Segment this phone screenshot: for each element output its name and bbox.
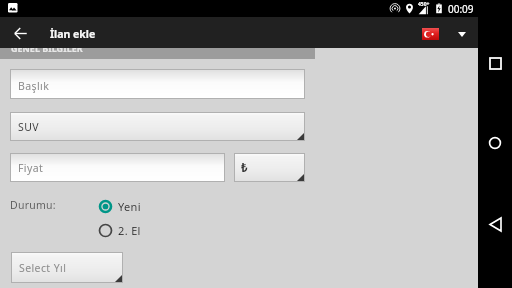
button[interactable]: Back: [482, 211, 508, 237]
staticText: ₺: [241, 160, 248, 176]
staticText: Fiyat: [18, 161, 44, 175]
button[interactable]: Fiyat: [10, 153, 225, 182]
button[interactable]: Language: [414, 17, 446, 48]
button[interactable]: Yeni: [98, 198, 141, 214]
button[interactable]: Recent apps: [482, 50, 508, 76]
staticText: GENEL BİLGİLER: [11, 42, 83, 54]
staticText: 450+: [418, 1, 430, 8]
staticText: İlan ekle: [50, 27, 96, 41]
button[interactable]: Select Yıl: [11, 252, 123, 283]
staticText: Başlık: [18, 79, 50, 93]
staticText: Yeni: [118, 199, 141, 214]
staticText: SUV: [18, 120, 39, 134]
button[interactable]: Başlık: [10, 69, 305, 99]
staticText: 00:09: [448, 2, 474, 16]
button[interactable]: SUV: [10, 112, 305, 141]
staticText: Durumu:: [10, 198, 56, 212]
button[interactable]: More options: [450, 17, 474, 48]
staticText: 2. El: [118, 223, 141, 238]
staticText: Select Yıl: [19, 261, 67, 275]
button[interactable]: Currency: [234, 153, 305, 182]
button[interactable]: Back: [9, 17, 31, 48]
button[interactable]: 2. El: [98, 222, 141, 238]
button[interactable]: Home: [482, 130, 508, 156]
